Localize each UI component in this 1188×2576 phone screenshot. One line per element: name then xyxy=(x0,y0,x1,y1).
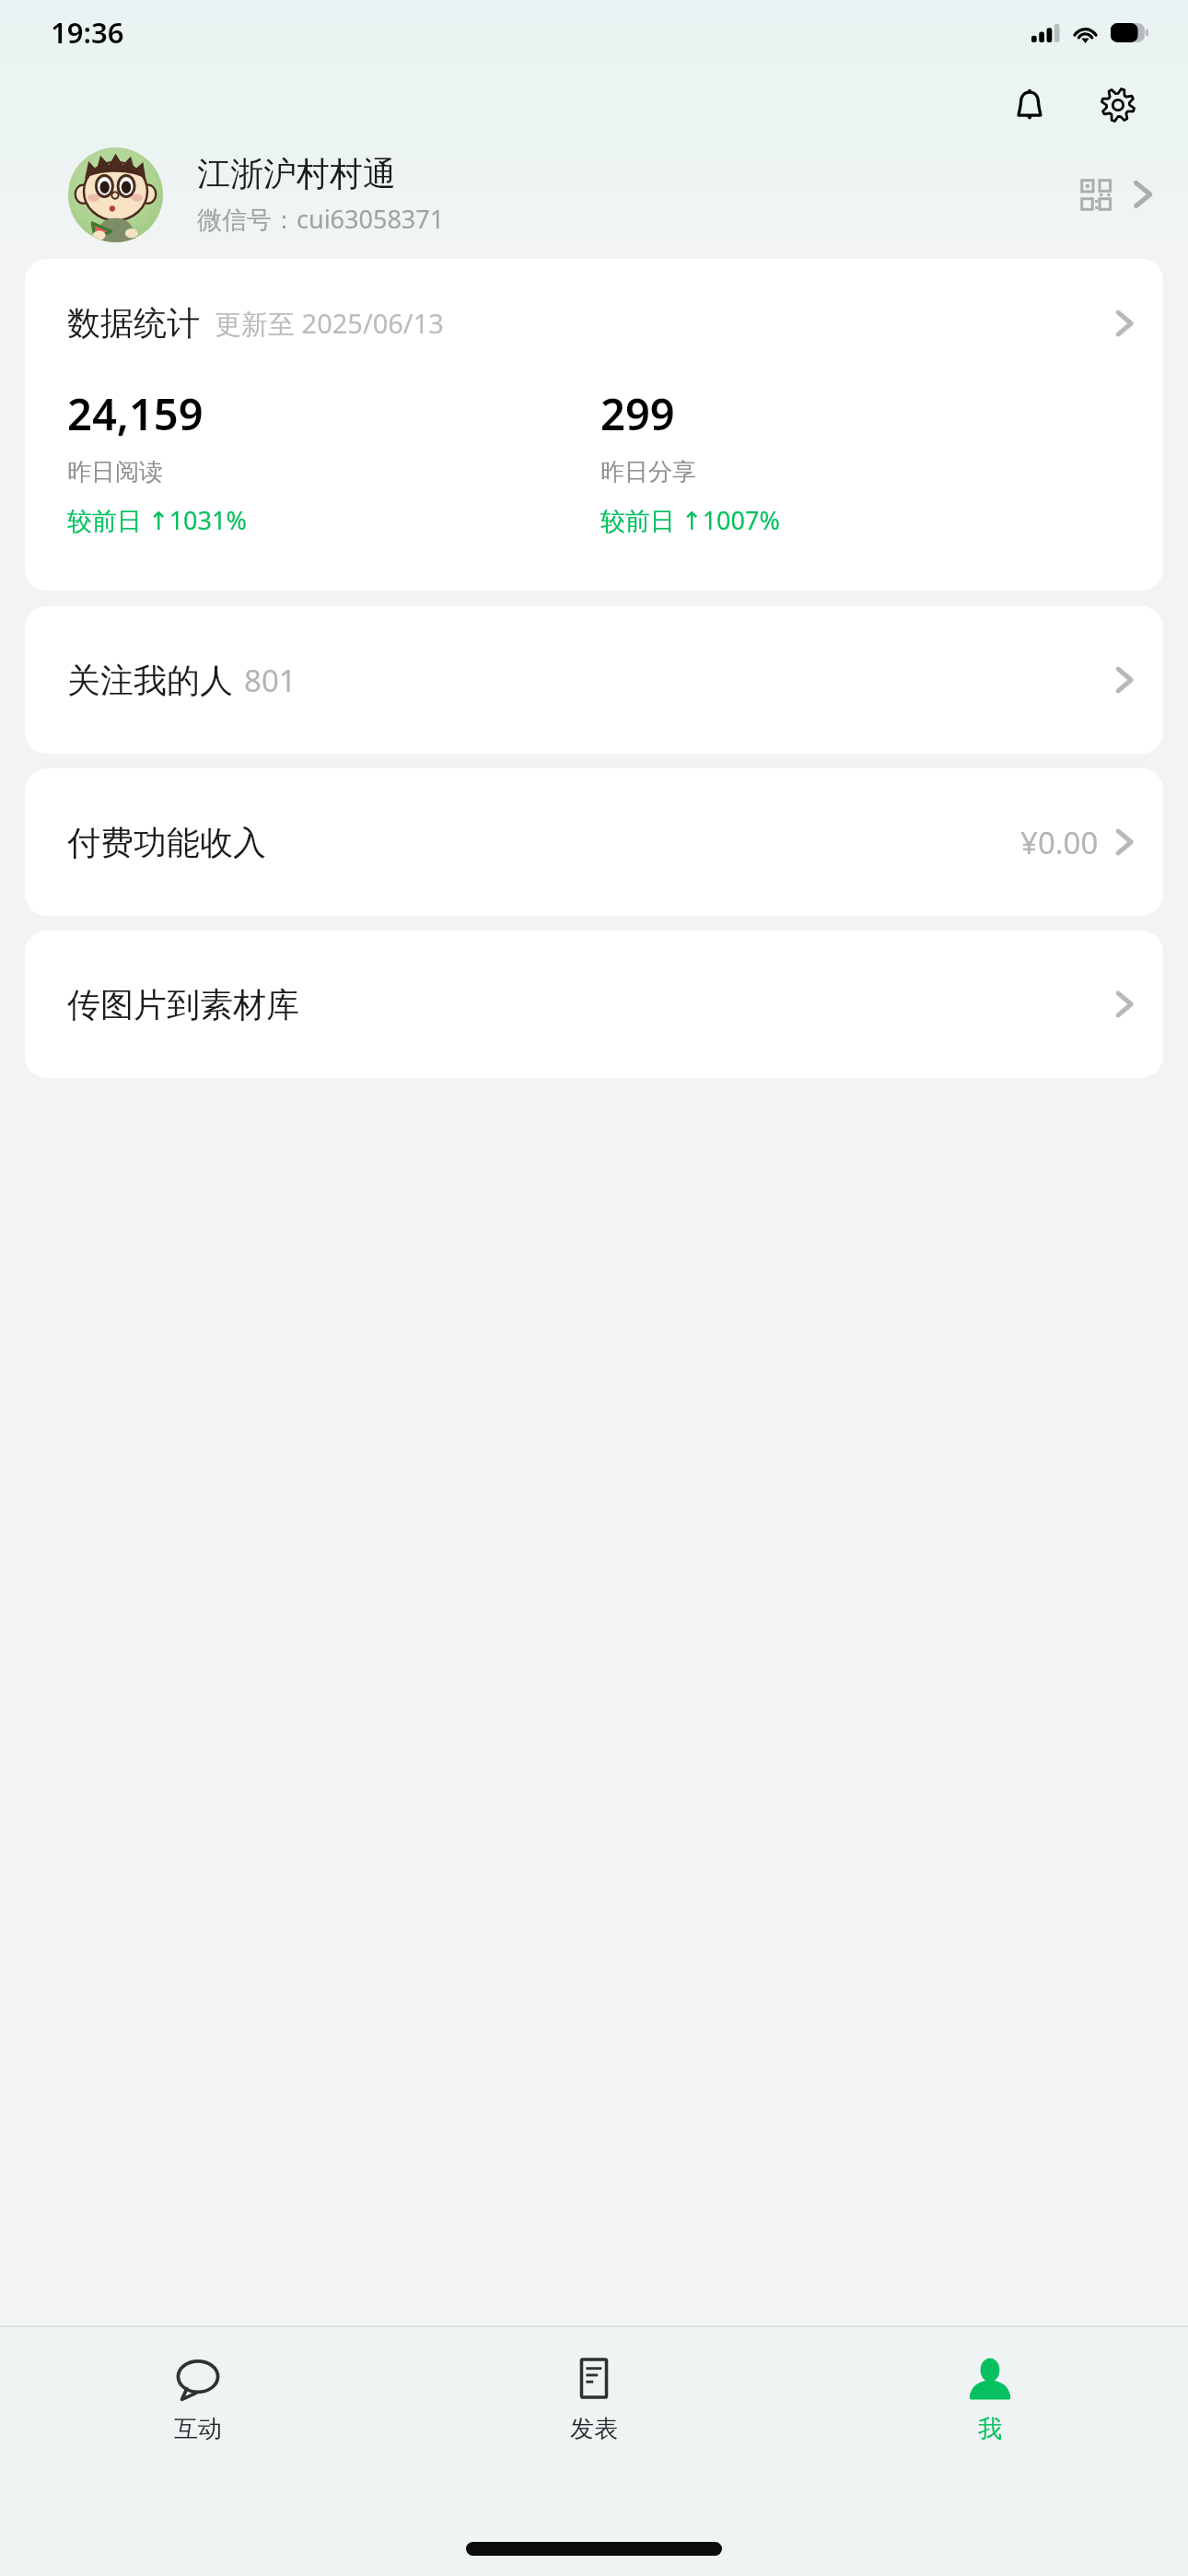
staticText: 传图片到素材库 xyxy=(67,984,299,1025)
button[interactable]: 数据统计 xyxy=(25,259,1163,591)
button[interactable]: 发表 xyxy=(396,2351,792,2448)
staticText: 299 xyxy=(600,384,675,443)
staticText: 发表 xyxy=(570,2414,618,2444)
staticText: 较前日 ↑1031% xyxy=(67,503,247,537)
button[interactable]: 付费功能收入 xyxy=(25,768,1163,916)
staticText: 我 xyxy=(978,2414,1002,2444)
button[interactable]: 我 xyxy=(792,2351,1188,2448)
staticText: 较前日 ↑1007% xyxy=(600,503,780,537)
staticText: 江浙沪村村通 xyxy=(197,153,396,194)
button[interactable]: 江浙沪村村通 xyxy=(0,144,1188,245)
staticText: 付费功能收入 xyxy=(67,822,266,863)
button[interactable]: Notifications xyxy=(995,70,1065,140)
button[interactable]: Settings xyxy=(1083,70,1153,140)
staticText: 801 xyxy=(244,660,297,701)
staticText: 19:36 xyxy=(51,13,124,52)
button[interactable]: 关注我的人 xyxy=(25,606,1163,754)
staticText: 昨日阅读 xyxy=(67,457,163,487)
staticText: 24,159 xyxy=(67,384,204,443)
staticText: 更新至 2025/06/13 xyxy=(215,305,444,342)
button[interactable]: 互动 xyxy=(0,2351,396,2448)
staticText: 微信号：cui63058371 xyxy=(197,202,445,236)
staticText: 关注我的人 xyxy=(67,660,233,701)
staticText: 互动 xyxy=(174,2414,222,2444)
staticText: 数据统计 xyxy=(67,302,200,344)
staticText: 昨日分享 xyxy=(600,457,696,487)
button[interactable]: 传图片到素材库 xyxy=(25,931,1163,1078)
staticText: ¥0.00 xyxy=(1020,822,1099,863)
